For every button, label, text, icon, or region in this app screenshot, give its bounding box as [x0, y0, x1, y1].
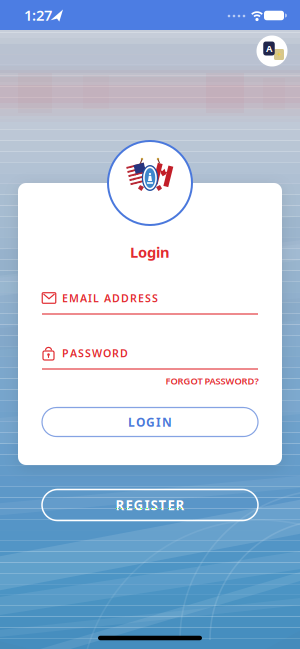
button[interactable]: R E G I S T E R: [42, 489, 258, 520]
button[interactable]: L O G I N: [42, 407, 258, 436]
staticText: FORGOT PASSWORD?: [165, 375, 258, 387]
button[interactable]: Change language: [256, 35, 287, 66]
staticText: Login: [130, 242, 170, 262]
button[interactable]: FORGOT PASSWORD?: [165, 375, 258, 387]
staticText: P A S S W O R D: [62, 346, 128, 360]
staticText: 1:27: [24, 5, 52, 25]
staticText: ✦: [276, 51, 282, 58]
staticText: E M A I L A D D R E S S: [62, 291, 158, 305]
staticText: R E G I S T E R: [115, 496, 184, 514]
staticText: A: [266, 42, 272, 55]
staticText: L O G I N: [128, 414, 172, 430]
